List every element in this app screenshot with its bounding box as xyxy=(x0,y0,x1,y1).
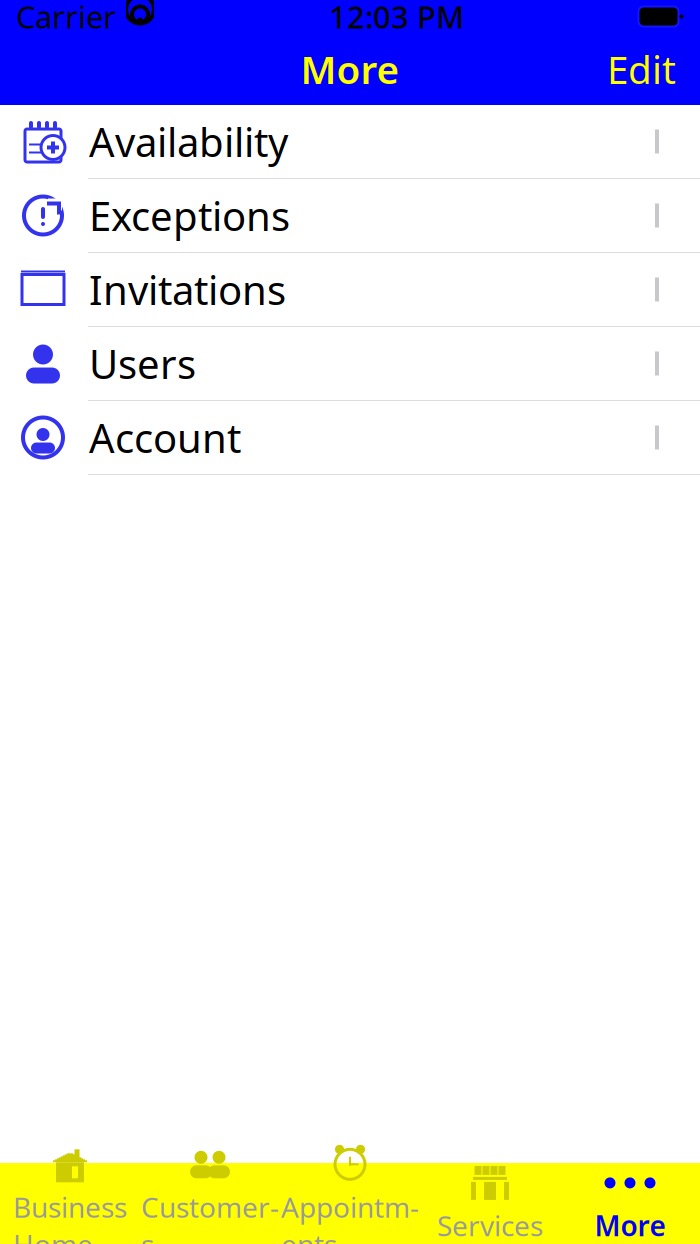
staticText: Invitations xyxy=(89,263,286,316)
button[interactable]: Edit xyxy=(597,35,686,103)
staticText: Appointments xyxy=(281,1188,419,1244)
button[interactable]: Appointments xyxy=(280,1163,420,1244)
staticText: Exceptions xyxy=(89,189,290,242)
staticText: Services xyxy=(437,1207,543,1244)
staticText: Users xyxy=(89,337,196,390)
button[interactable]: More xyxy=(560,1163,700,1244)
staticText: Availability xyxy=(89,115,288,168)
staticText: 12:03 PM xyxy=(329,0,464,37)
staticText: More xyxy=(300,43,399,95)
staticText: Carrier xyxy=(16,0,116,37)
button[interactable]: Business Home xyxy=(0,1163,140,1244)
button[interactable]: Availability xyxy=(0,105,700,179)
button[interactable]: Exceptions xyxy=(0,179,700,253)
button[interactable]: Users xyxy=(0,327,700,401)
staticText: Edit xyxy=(607,43,676,95)
staticText: Customers xyxy=(141,1188,279,1244)
button[interactable]: Customers xyxy=(140,1163,280,1244)
button[interactable]: Account xyxy=(0,401,700,475)
button[interactable]: Services xyxy=(420,1163,560,1244)
staticText: More xyxy=(594,1207,665,1244)
button[interactable]: Invitations xyxy=(0,253,700,327)
staticText: Business Home xyxy=(13,1188,127,1244)
staticText: Account xyxy=(89,411,241,464)
